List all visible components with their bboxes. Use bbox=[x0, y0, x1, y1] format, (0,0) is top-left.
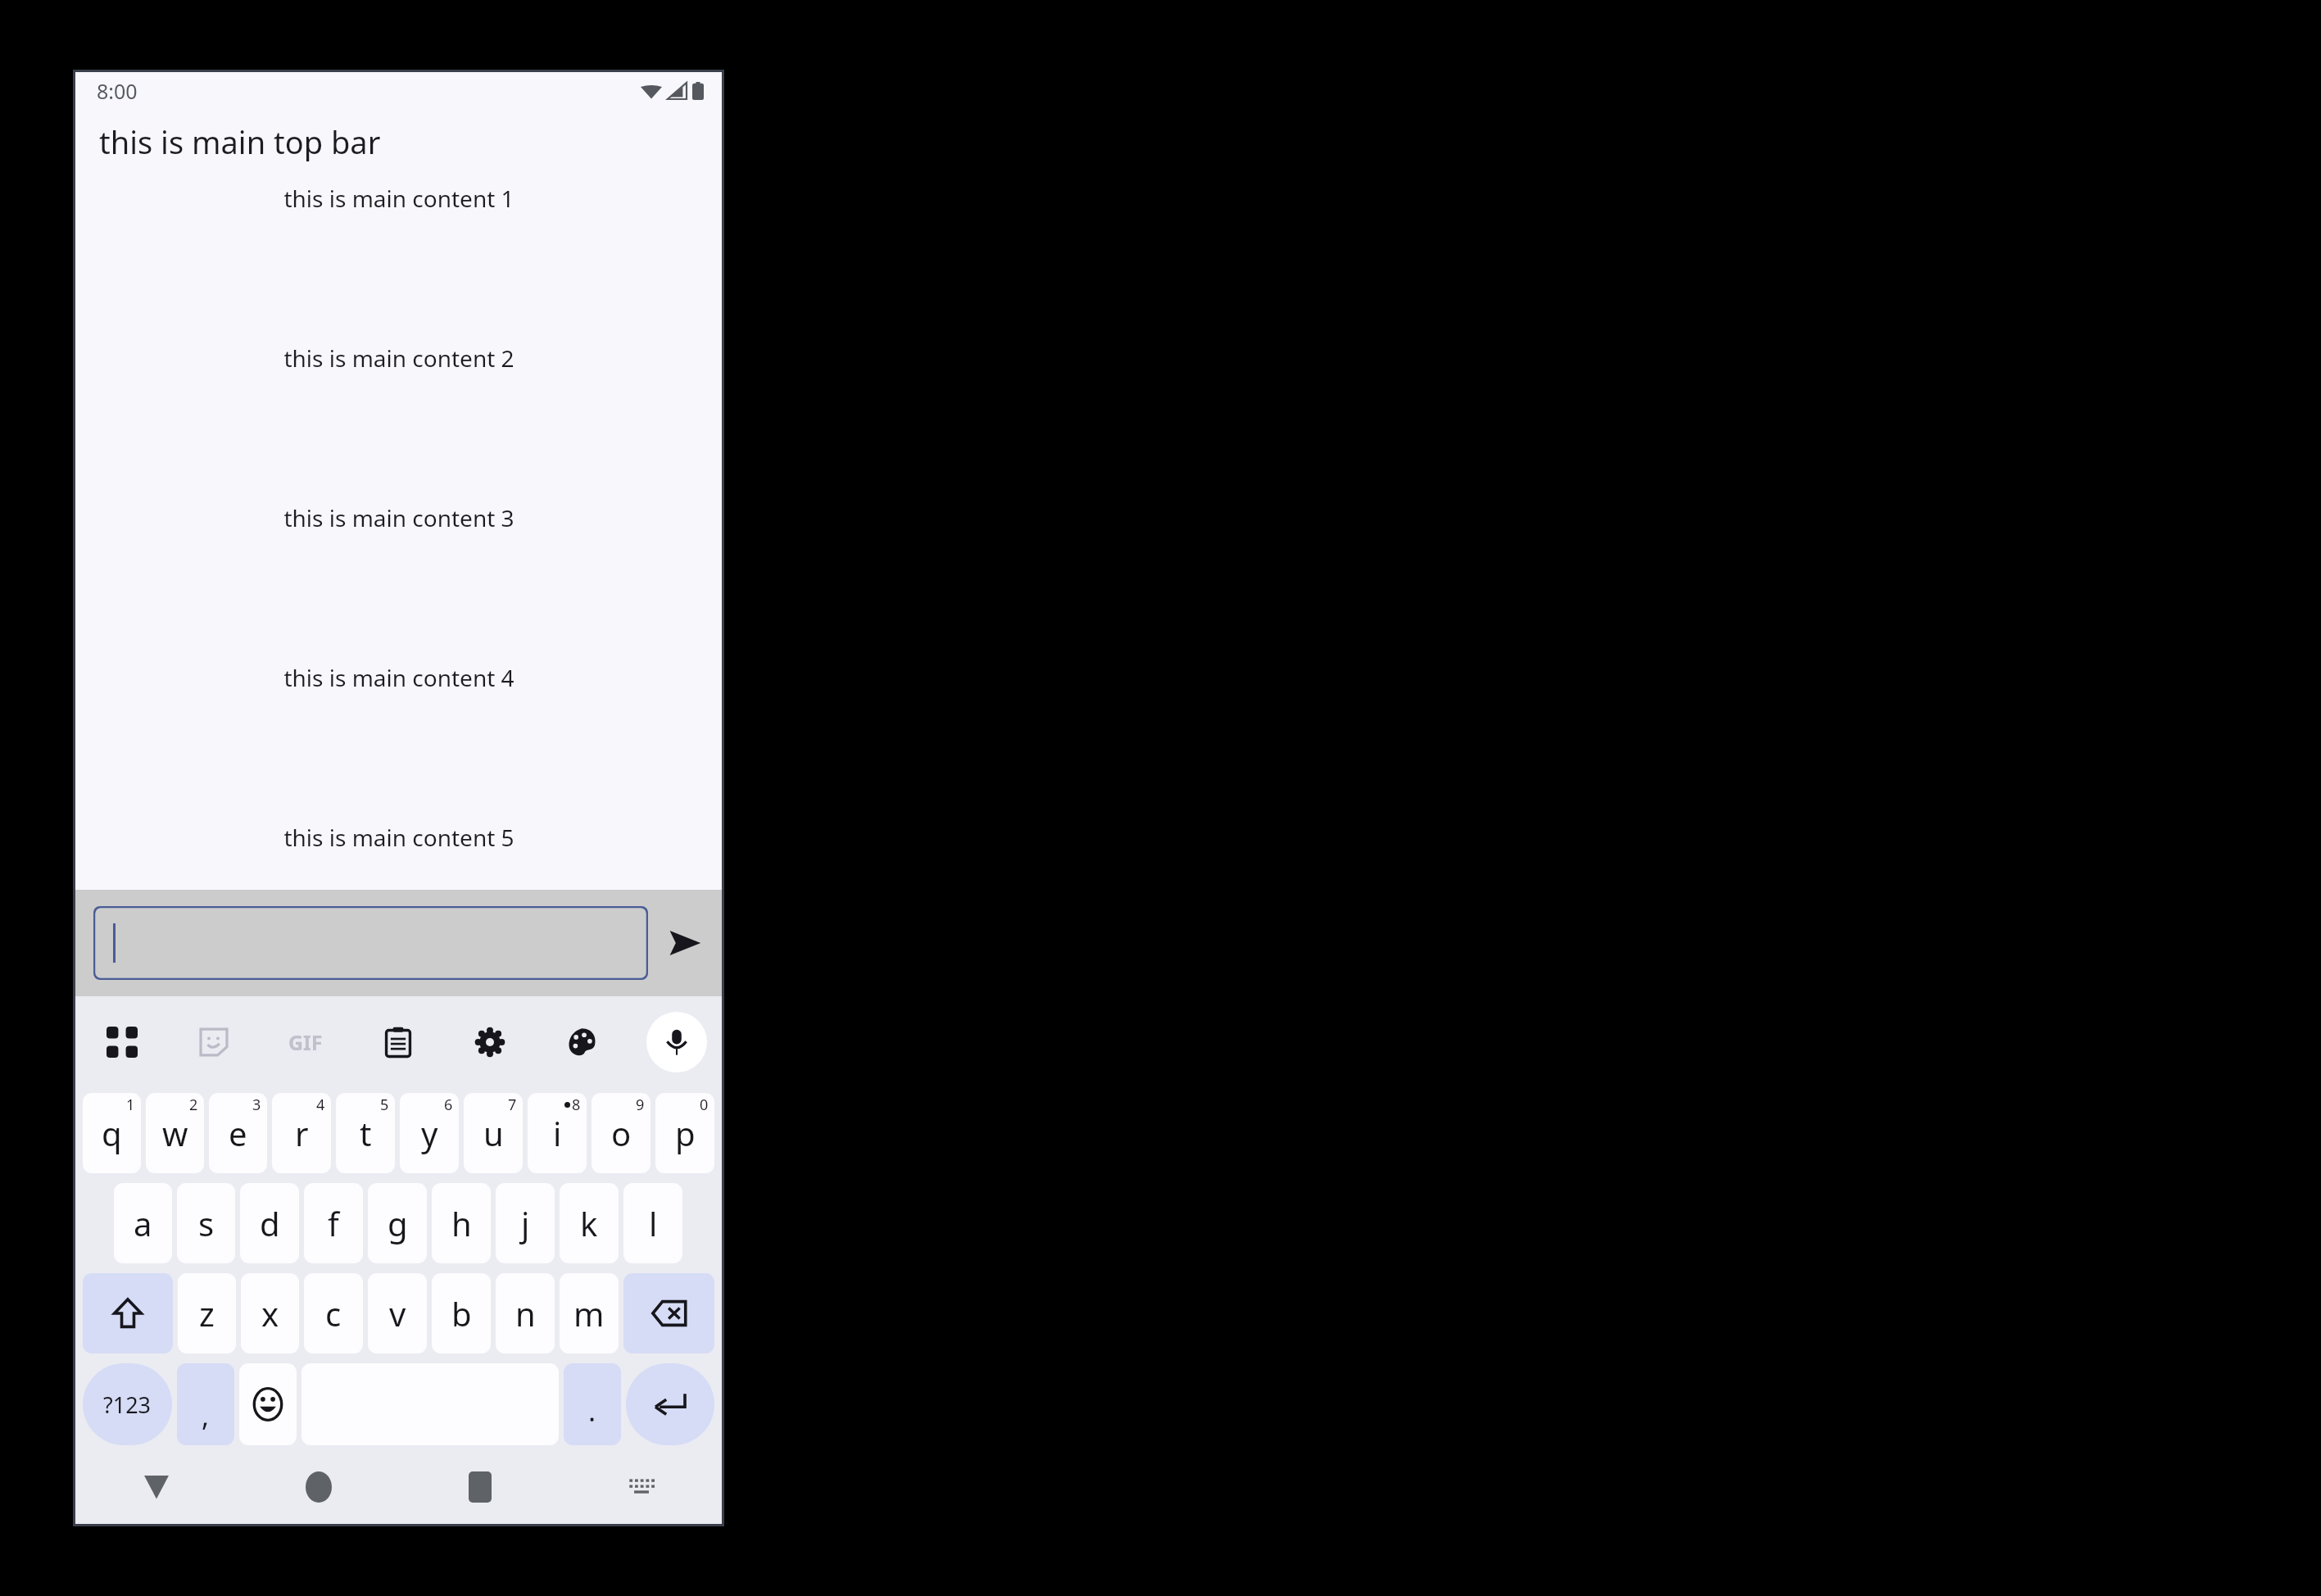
staticText: e bbox=[229, 1111, 247, 1155]
button[interactable]: q bbox=[83, 1093, 141, 1173]
staticText: . bbox=[588, 1392, 596, 1430]
staticText: x bbox=[261, 1291, 279, 1335]
staticText: u bbox=[483, 1111, 504, 1155]
staticText: 7 bbox=[508, 1095, 517, 1115]
staticText: 3 bbox=[252, 1095, 261, 1115]
button[interactable]: w bbox=[146, 1093, 204, 1173]
button[interactable]: z bbox=[178, 1273, 236, 1353]
button[interactable]: l bbox=[623, 1183, 682, 1263]
staticText: this is main content 3 bbox=[283, 502, 515, 533]
button[interactable]: this is main content 1 bbox=[75, 174, 722, 223]
button[interactable]: Home bbox=[238, 1450, 399, 1524]
staticText: h bbox=[451, 1201, 472, 1245]
staticText: a bbox=[134, 1201, 152, 1245]
staticText: , bbox=[202, 1397, 210, 1435]
button[interactable]: Voice input bbox=[646, 1012, 707, 1072]
staticText: p bbox=[675, 1111, 696, 1155]
button[interactable]: Symbols bbox=[83, 1363, 172, 1445]
staticText: GIF bbox=[288, 1028, 323, 1056]
staticText: c bbox=[325, 1291, 342, 1335]
staticText: n bbox=[515, 1291, 536, 1335]
staticText: 9 bbox=[636, 1095, 645, 1115]
staticText: this is main top bar bbox=[99, 120, 381, 163]
button[interactable]: u bbox=[464, 1093, 523, 1173]
button[interactable]: a bbox=[114, 1183, 172, 1263]
staticText: this is main content 5 bbox=[283, 822, 515, 853]
button[interactable]: c bbox=[304, 1273, 363, 1353]
button[interactable]: k bbox=[560, 1183, 619, 1263]
button[interactable]: r bbox=[272, 1093, 331, 1173]
staticText: 8 bbox=[572, 1095, 581, 1115]
button[interactable]: i bbox=[528, 1093, 587, 1173]
staticText: g bbox=[388, 1201, 408, 1245]
staticText: r bbox=[295, 1111, 309, 1155]
button[interactable]: Themes bbox=[555, 1015, 609, 1069]
button[interactable]: o bbox=[592, 1093, 651, 1173]
button[interactable]: h bbox=[432, 1183, 491, 1263]
staticText: ?123 bbox=[103, 1390, 152, 1420]
staticText: o bbox=[611, 1111, 632, 1155]
button[interactable]: Clipboard bbox=[371, 1015, 425, 1069]
button[interactable]: x bbox=[241, 1273, 299, 1353]
staticText: 5 bbox=[380, 1095, 389, 1115]
button[interactable]: Period bbox=[564, 1363, 621, 1445]
staticText: z bbox=[199, 1291, 215, 1335]
button[interactable] bbox=[93, 906, 648, 980]
button[interactable]: m bbox=[560, 1273, 619, 1353]
staticText: this is main content 2 bbox=[283, 342, 515, 374]
button[interactable]: g bbox=[368, 1183, 427, 1263]
staticText: i bbox=[553, 1111, 562, 1155]
button[interactable]: Settings bbox=[463, 1015, 517, 1069]
button[interactable]: Enter bbox=[626, 1363, 714, 1445]
button[interactable]: this is main content 2 bbox=[75, 333, 722, 383]
button[interactable]: Stickers bbox=[187, 1015, 241, 1069]
staticText: s bbox=[198, 1201, 215, 1245]
button[interactable]: Comma bbox=[177, 1363, 234, 1445]
staticText: f bbox=[328, 1201, 339, 1245]
button[interactable]: GIF bbox=[279, 1015, 333, 1069]
button[interactable]: d bbox=[240, 1183, 299, 1263]
staticText: this is main content 4 bbox=[283, 662, 515, 693]
staticText: j bbox=[521, 1201, 530, 1245]
staticText: this is main content 1 bbox=[283, 183, 515, 214]
button[interactable]: Send bbox=[648, 890, 722, 996]
button[interactable]: b bbox=[432, 1273, 491, 1353]
staticText: b bbox=[451, 1291, 472, 1335]
staticText: 0 bbox=[700, 1095, 709, 1115]
staticText: t bbox=[360, 1111, 372, 1155]
button[interactable]: Backspace bbox=[623, 1273, 714, 1353]
button[interactable]: Back bbox=[75, 1450, 238, 1524]
staticText: q bbox=[102, 1111, 122, 1155]
staticText: 4 bbox=[316, 1095, 325, 1115]
button[interactable]: this is main content 4 bbox=[75, 653, 722, 702]
button[interactable]: this is main content 5 bbox=[75, 813, 722, 862]
staticText: v bbox=[389, 1291, 406, 1335]
button[interactable]: n bbox=[496, 1273, 555, 1353]
button[interactable]: s bbox=[177, 1183, 235, 1263]
staticText: d bbox=[260, 1201, 280, 1245]
button[interactable]: Recents bbox=[399, 1450, 560, 1524]
button[interactable]: v bbox=[368, 1273, 427, 1353]
staticText: w bbox=[162, 1111, 188, 1155]
button[interactable]: y bbox=[400, 1093, 459, 1173]
button[interactable]: f bbox=[304, 1183, 363, 1263]
button[interactable]: t bbox=[336, 1093, 395, 1173]
button[interactable]: p bbox=[655, 1093, 714, 1173]
staticText: m bbox=[573, 1291, 605, 1335]
staticText: 6 bbox=[444, 1095, 453, 1115]
staticText: 8:00 bbox=[97, 77, 138, 105]
staticText: 1 bbox=[126, 1095, 135, 1115]
staticText: y bbox=[421, 1111, 438, 1155]
staticText: 2 bbox=[189, 1095, 198, 1115]
button[interactable]: Switch keyboard bbox=[560, 1450, 722, 1524]
button[interactable]: e bbox=[209, 1093, 267, 1173]
button[interactable]: j bbox=[496, 1183, 555, 1263]
button[interactable]: Apps bbox=[95, 1015, 149, 1069]
staticText: k bbox=[580, 1201, 598, 1245]
button[interactable]: Shift bbox=[83, 1273, 173, 1353]
button[interactable]: this is main content 3 bbox=[75, 493, 722, 542]
staticText: l bbox=[649, 1201, 658, 1245]
button[interactable]: Emoji bbox=[239, 1363, 297, 1445]
